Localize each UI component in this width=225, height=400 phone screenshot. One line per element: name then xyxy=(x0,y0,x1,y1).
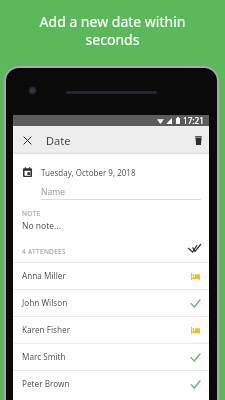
staticText: NOTE xyxy=(22,209,41,218)
button[interactable]: Tuesday, October 9, 2018 xyxy=(13,154,209,182)
button[interactable]: John Wilson xyxy=(13,290,209,316)
button[interactable]: Anna Miller xyxy=(13,263,209,289)
staticText: Karen Fisher xyxy=(22,324,71,335)
button[interactable]: Name xyxy=(13,182,209,199)
staticText: No note... xyxy=(22,220,61,232)
button[interactable]: Close xyxy=(13,126,41,154)
button[interactable]: Peter Brown xyxy=(13,371,209,397)
button[interactable] xyxy=(13,199,209,235)
button[interactable]: Delete xyxy=(187,126,209,154)
staticText: Marc Smith xyxy=(22,351,66,362)
staticText: Tuesday, October 9, 2018 xyxy=(41,167,136,178)
button[interactable]: Marc Smith xyxy=(13,344,209,370)
staticText: Add a new date within seconds xyxy=(0,12,225,49)
staticText: Anna Miller xyxy=(22,270,66,281)
button[interactable]: Select all attendees xyxy=(187,240,202,255)
staticText: 4 ATTENDEES xyxy=(22,247,66,256)
button[interactable]: Karen Fisher xyxy=(13,317,209,343)
staticText: Date xyxy=(46,133,71,148)
staticText: 17:21 xyxy=(183,115,204,126)
staticText: John Wilson xyxy=(22,297,68,308)
staticText: Peter Brown xyxy=(22,378,70,389)
staticText: Name xyxy=(41,186,65,198)
